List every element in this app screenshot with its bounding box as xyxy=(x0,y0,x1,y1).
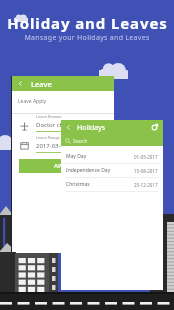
staticText: 25-12-2017 xyxy=(134,182,158,188)
button[interactable]: Independence Day xyxy=(61,164,163,178)
staticText: Leave Reason xyxy=(36,114,62,119)
staticText: Mansage your Holidays and Leaves xyxy=(24,33,150,43)
staticText: May Day xyxy=(66,153,87,160)
button[interactable]: Leave Reason xyxy=(36,114,108,132)
button[interactable]: Refresh xyxy=(149,122,160,133)
button[interactable]: Back xyxy=(12,76,114,91)
button[interactable]: Back xyxy=(61,120,163,135)
staticText: Leave Apply xyxy=(18,98,47,105)
button[interactable]: Search xyxy=(61,135,163,146)
staticText: 2017-03-09 - xyxy=(36,142,71,150)
button[interactable]: May Day xyxy=(61,150,163,164)
button[interactable]: Leave Range xyxy=(36,135,108,153)
button[interactable]: Back xyxy=(16,79,25,88)
staticText: Doctor chec xyxy=(36,121,70,129)
button[interactable]: Back xyxy=(64,123,73,132)
staticText: 15-08-2017 xyxy=(134,168,158,174)
staticText: Holiday and Leaves xyxy=(7,13,168,33)
staticText: Leave Range xyxy=(36,135,60,140)
staticText: APPLY xyxy=(54,162,72,170)
staticText: Christmas xyxy=(66,181,90,188)
staticText: 01-05-2017 xyxy=(134,154,158,160)
staticText: Holidays xyxy=(77,123,106,133)
button[interactable]: APPLY xyxy=(19,159,107,173)
staticText: Independence Day xyxy=(66,167,111,174)
staticText: Search xyxy=(73,138,88,144)
staticText: Leave xyxy=(31,79,52,89)
button[interactable]: Christmas xyxy=(61,178,163,192)
